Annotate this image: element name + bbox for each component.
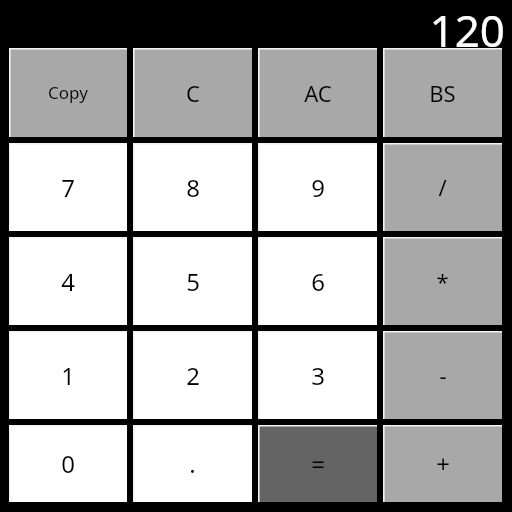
button[interactable]: * (383, 237, 502, 325)
staticText: 0 (61, 447, 75, 480)
staticText: BS (429, 78, 456, 108)
button[interactable]: 6 (258, 237, 377, 325)
staticText: 6 (311, 265, 325, 298)
staticText: . (189, 447, 196, 480)
staticText: 3 (311, 359, 325, 392)
staticText: 7 (61, 171, 75, 204)
button[interactable]: BS (383, 48, 502, 137)
button[interactable]: 0 (9, 425, 127, 502)
button[interactable]: 1 (9, 331, 127, 419)
staticText: 8 (186, 171, 200, 204)
staticText: 1 (61, 359, 75, 392)
button[interactable]: . (133, 425, 252, 502)
staticText: 9 (311, 171, 325, 204)
staticText: + (436, 447, 450, 480)
button[interactable]: + (383, 425, 502, 502)
button[interactable]: 2 (133, 331, 252, 419)
button[interactable]: 8 (133, 143, 252, 231)
button[interactable]: 5 (133, 237, 252, 325)
button[interactable]: Copy (9, 48, 127, 137)
staticText: 2 (186, 359, 200, 392)
button[interactable]: 3 (258, 331, 377, 419)
staticText: = (311, 447, 325, 480)
staticText: 120 (429, 0, 505, 48)
button[interactable]: 4 (9, 237, 127, 325)
button[interactable]: = (258, 425, 377, 502)
staticText: 5 (186, 265, 200, 298)
button[interactable]: / (383, 143, 502, 231)
staticText: AC (304, 78, 332, 108)
button[interactable]: AC (258, 48, 377, 137)
staticText: Copy (48, 81, 88, 104)
staticText: - (439, 360, 447, 390)
button[interactable]: - (383, 331, 502, 419)
staticText: 4 (61, 265, 75, 298)
button[interactable]: 7 (9, 143, 127, 231)
button[interactable]: 9 (258, 143, 377, 231)
button[interactable]: C (133, 48, 252, 137)
staticText: * (436, 266, 449, 296)
staticText: / (438, 172, 447, 202)
staticText: C (186, 78, 200, 108)
